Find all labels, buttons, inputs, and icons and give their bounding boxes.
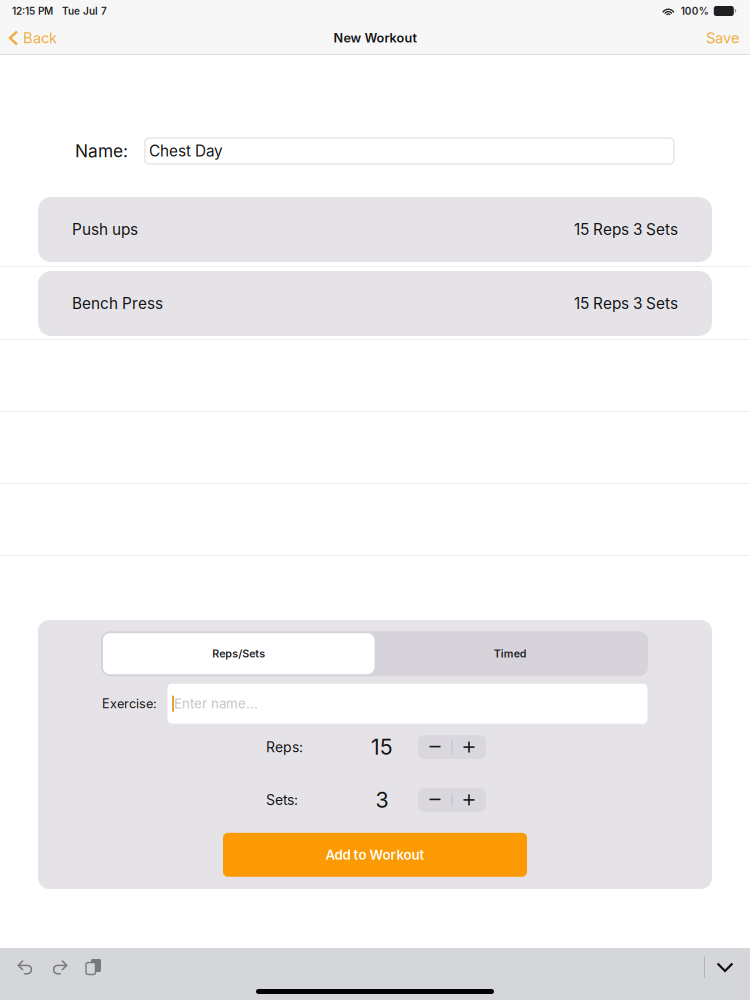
button[interactable]: Redo: [43, 952, 77, 982]
button[interactable]: Add to Workout: [223, 833, 527, 877]
staticText: New Workout: [333, 30, 416, 46]
button[interactable]: Save: [696, 22, 750, 54]
button[interactable]: Push ups: [38, 197, 712, 262]
staticText: 15: [371, 734, 393, 760]
staticText: Sets:: [266, 791, 298, 808]
staticText: Enter name...: [174, 696, 258, 712]
staticText: 15 Reps 3 Sets: [574, 294, 678, 313]
staticText: Reps/Sets: [212, 647, 265, 660]
staticText: Push ups: [72, 220, 138, 239]
button[interactable]: Undo: [8, 952, 42, 982]
staticText: Back: [23, 29, 57, 47]
button[interactable]: Bench Press: [38, 271, 712, 336]
staticText: Exercise:: [102, 696, 157, 711]
button[interactable]: Decrease: [418, 788, 451, 812]
staticText: Add to Workout: [325, 847, 424, 863]
staticText: 15 Reps 3 Sets: [574, 220, 678, 239]
button[interactable]: Back: [0, 22, 67, 54]
button[interactable]: Decrease: [418, 735, 451, 759]
button[interactable]: Timed: [374, 633, 646, 674]
staticText: 3: [375, 787, 388, 813]
button[interactable]: Hide keyboard: [705, 952, 745, 982]
staticText: Save: [706, 29, 740, 47]
staticText: Reps:: [266, 739, 303, 755]
staticText: Chest Day: [149, 142, 223, 160]
button[interactable]: Increase: [452, 735, 485, 759]
staticText: Name:: [75, 140, 128, 161]
button[interactable]: Paste: [78, 952, 109, 982]
staticText: 100%: [681, 5, 709, 17]
button[interactable]: Increase: [452, 788, 485, 812]
staticText: 12:15 PM: [12, 5, 53, 17]
button[interactable]: Reps/Sets: [103, 633, 374, 674]
staticText: Timed: [494, 647, 527, 660]
staticText: Bench Press: [72, 294, 163, 313]
staticText: Tue Jul 7: [62, 5, 107, 17]
